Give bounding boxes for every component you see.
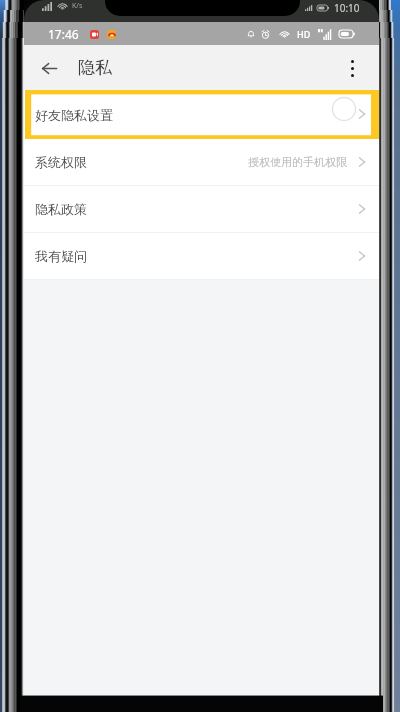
button[interactable]: 好友隐私设置 [35,90,366,139]
button[interactable]: 隐私政策 [24,186,379,232]
staticText: 10:10 [334,1,360,15]
staticText: K/s [72,1,83,11]
staticText: HD [297,28,311,40]
staticText: 我有疑问 [35,248,87,264]
button[interactable]: 系统权限 [24,139,379,185]
button[interactable]: More options [337,53,367,83]
staticText: 隐私 [78,57,112,78]
staticText: 隐私政策 [35,201,87,217]
staticText: 授权使用的手机权限 [248,155,347,169]
staticText: 好友隐私设置 [35,107,113,123]
staticText: 系统权限 [35,154,87,170]
button[interactable]: 我有疑问 [24,233,379,279]
button[interactable]: Back [35,54,63,82]
staticText: 17:46 [48,26,79,42]
